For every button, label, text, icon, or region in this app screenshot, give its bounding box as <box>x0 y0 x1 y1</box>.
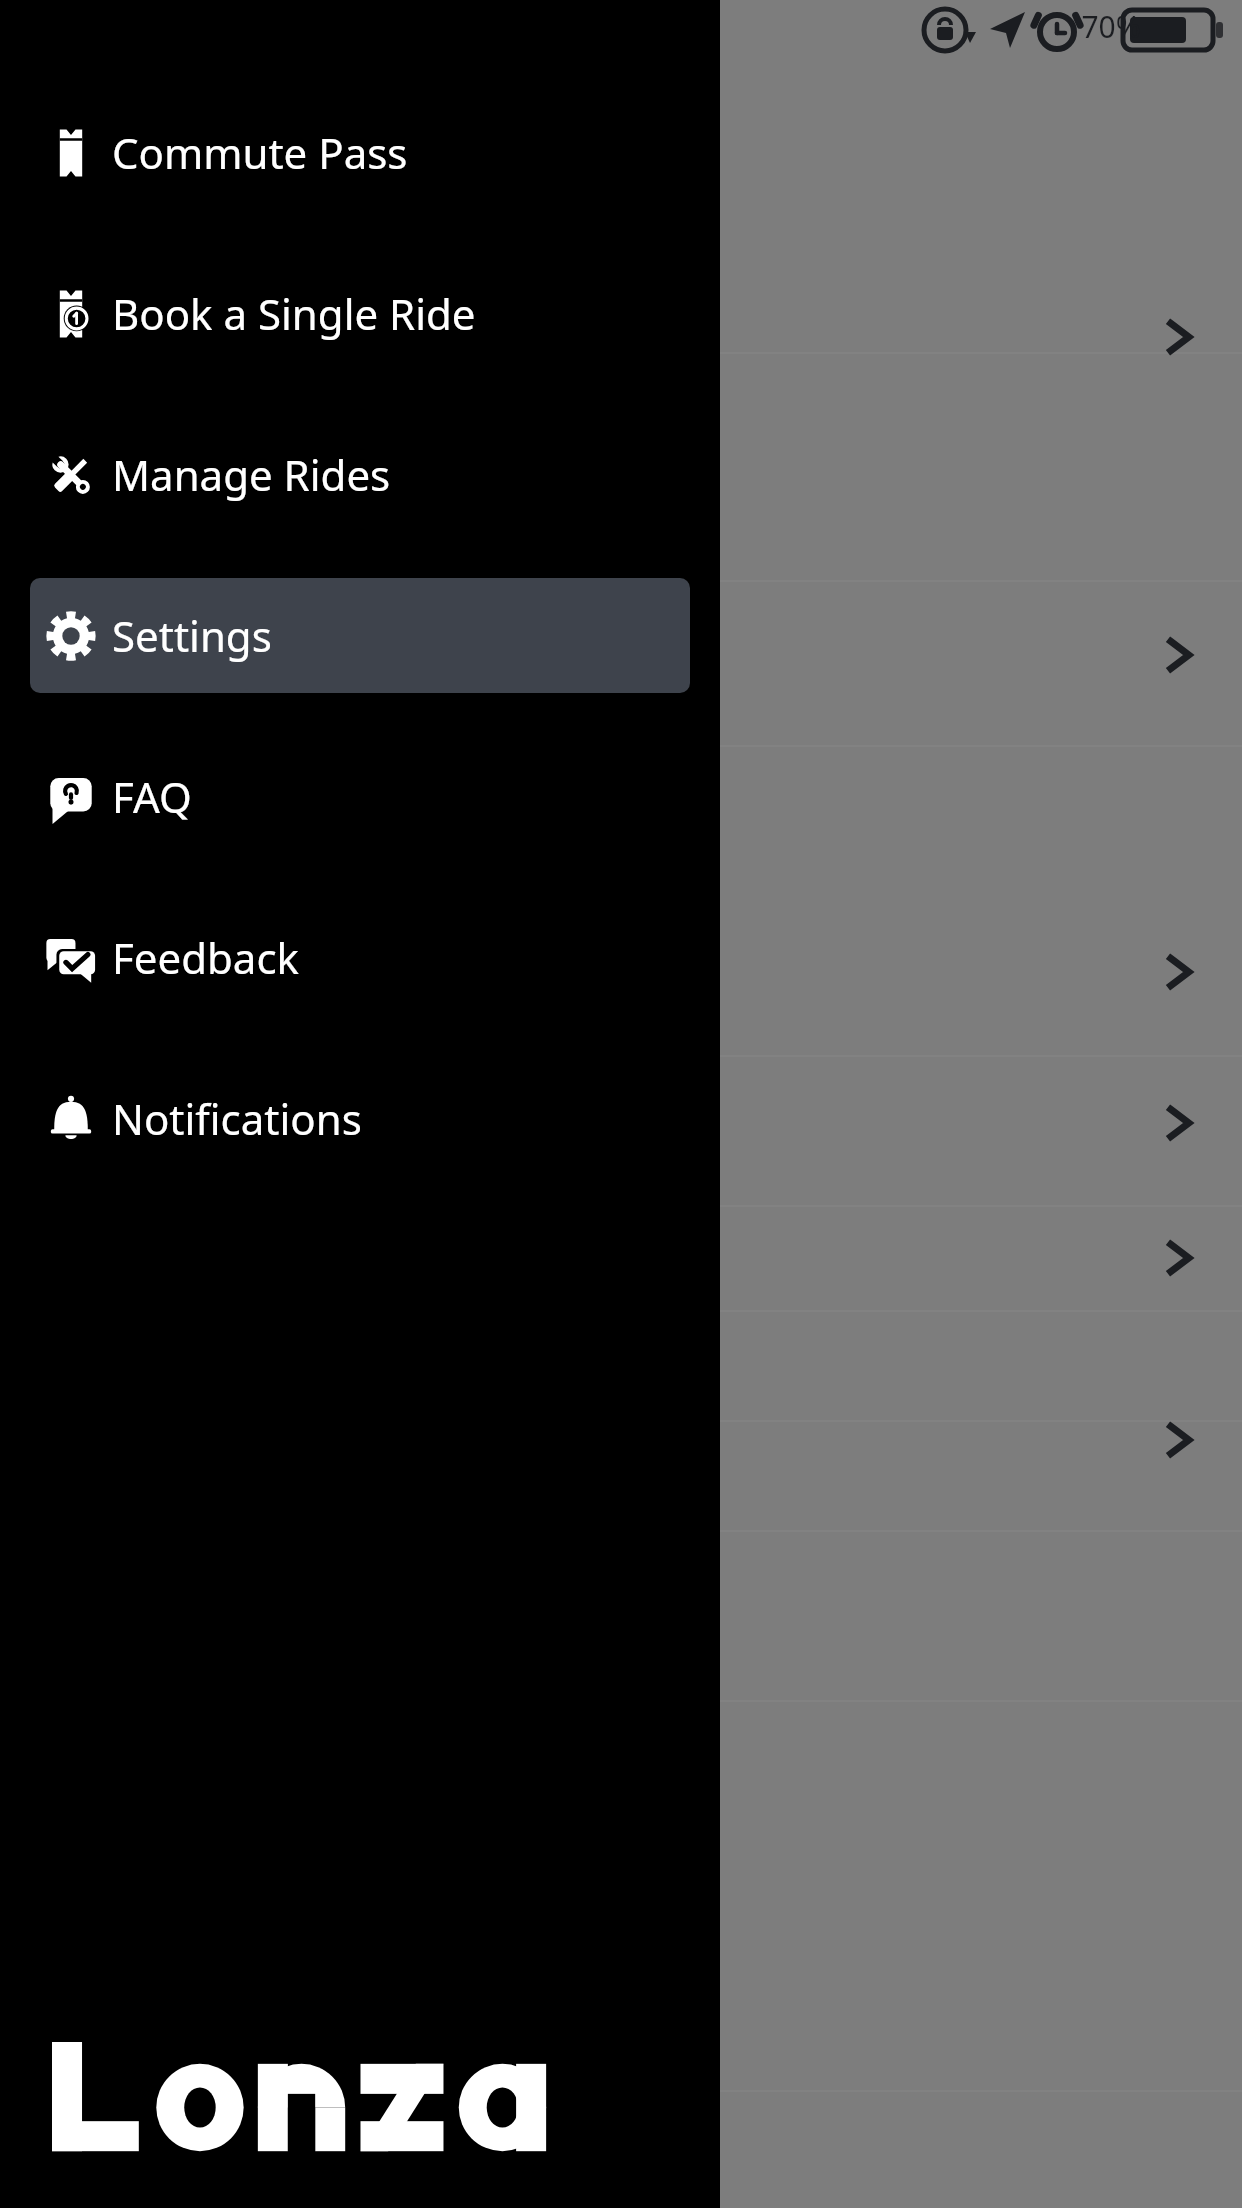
staticText: Notifications <box>112 1090 362 1147</box>
staticText: Manage Rides <box>112 446 391 503</box>
staticText: Settings <box>112 607 272 664</box>
staticText: FAQ <box>112 768 192 825</box>
staticText: Feedback <box>112 929 299 986</box>
button[interactable]: Feedback <box>30 900 690 1015</box>
button[interactable]: Settings <box>30 578 690 693</box>
staticText: Commute Pass <box>112 124 408 181</box>
button[interactable]: FAQ <box>30 739 690 854</box>
staticText: Book a Single Ride <box>112 285 476 342</box>
button[interactable]: Manage Rides <box>30 417 690 532</box>
button[interactable]: Book a Single Ride <box>30 256 690 371</box>
staticText: 70% <box>1077 6 1145 47</box>
button[interactable]: Commute Pass <box>30 95 690 210</box>
button[interactable]: Notifications <box>30 1061 690 1176</box>
